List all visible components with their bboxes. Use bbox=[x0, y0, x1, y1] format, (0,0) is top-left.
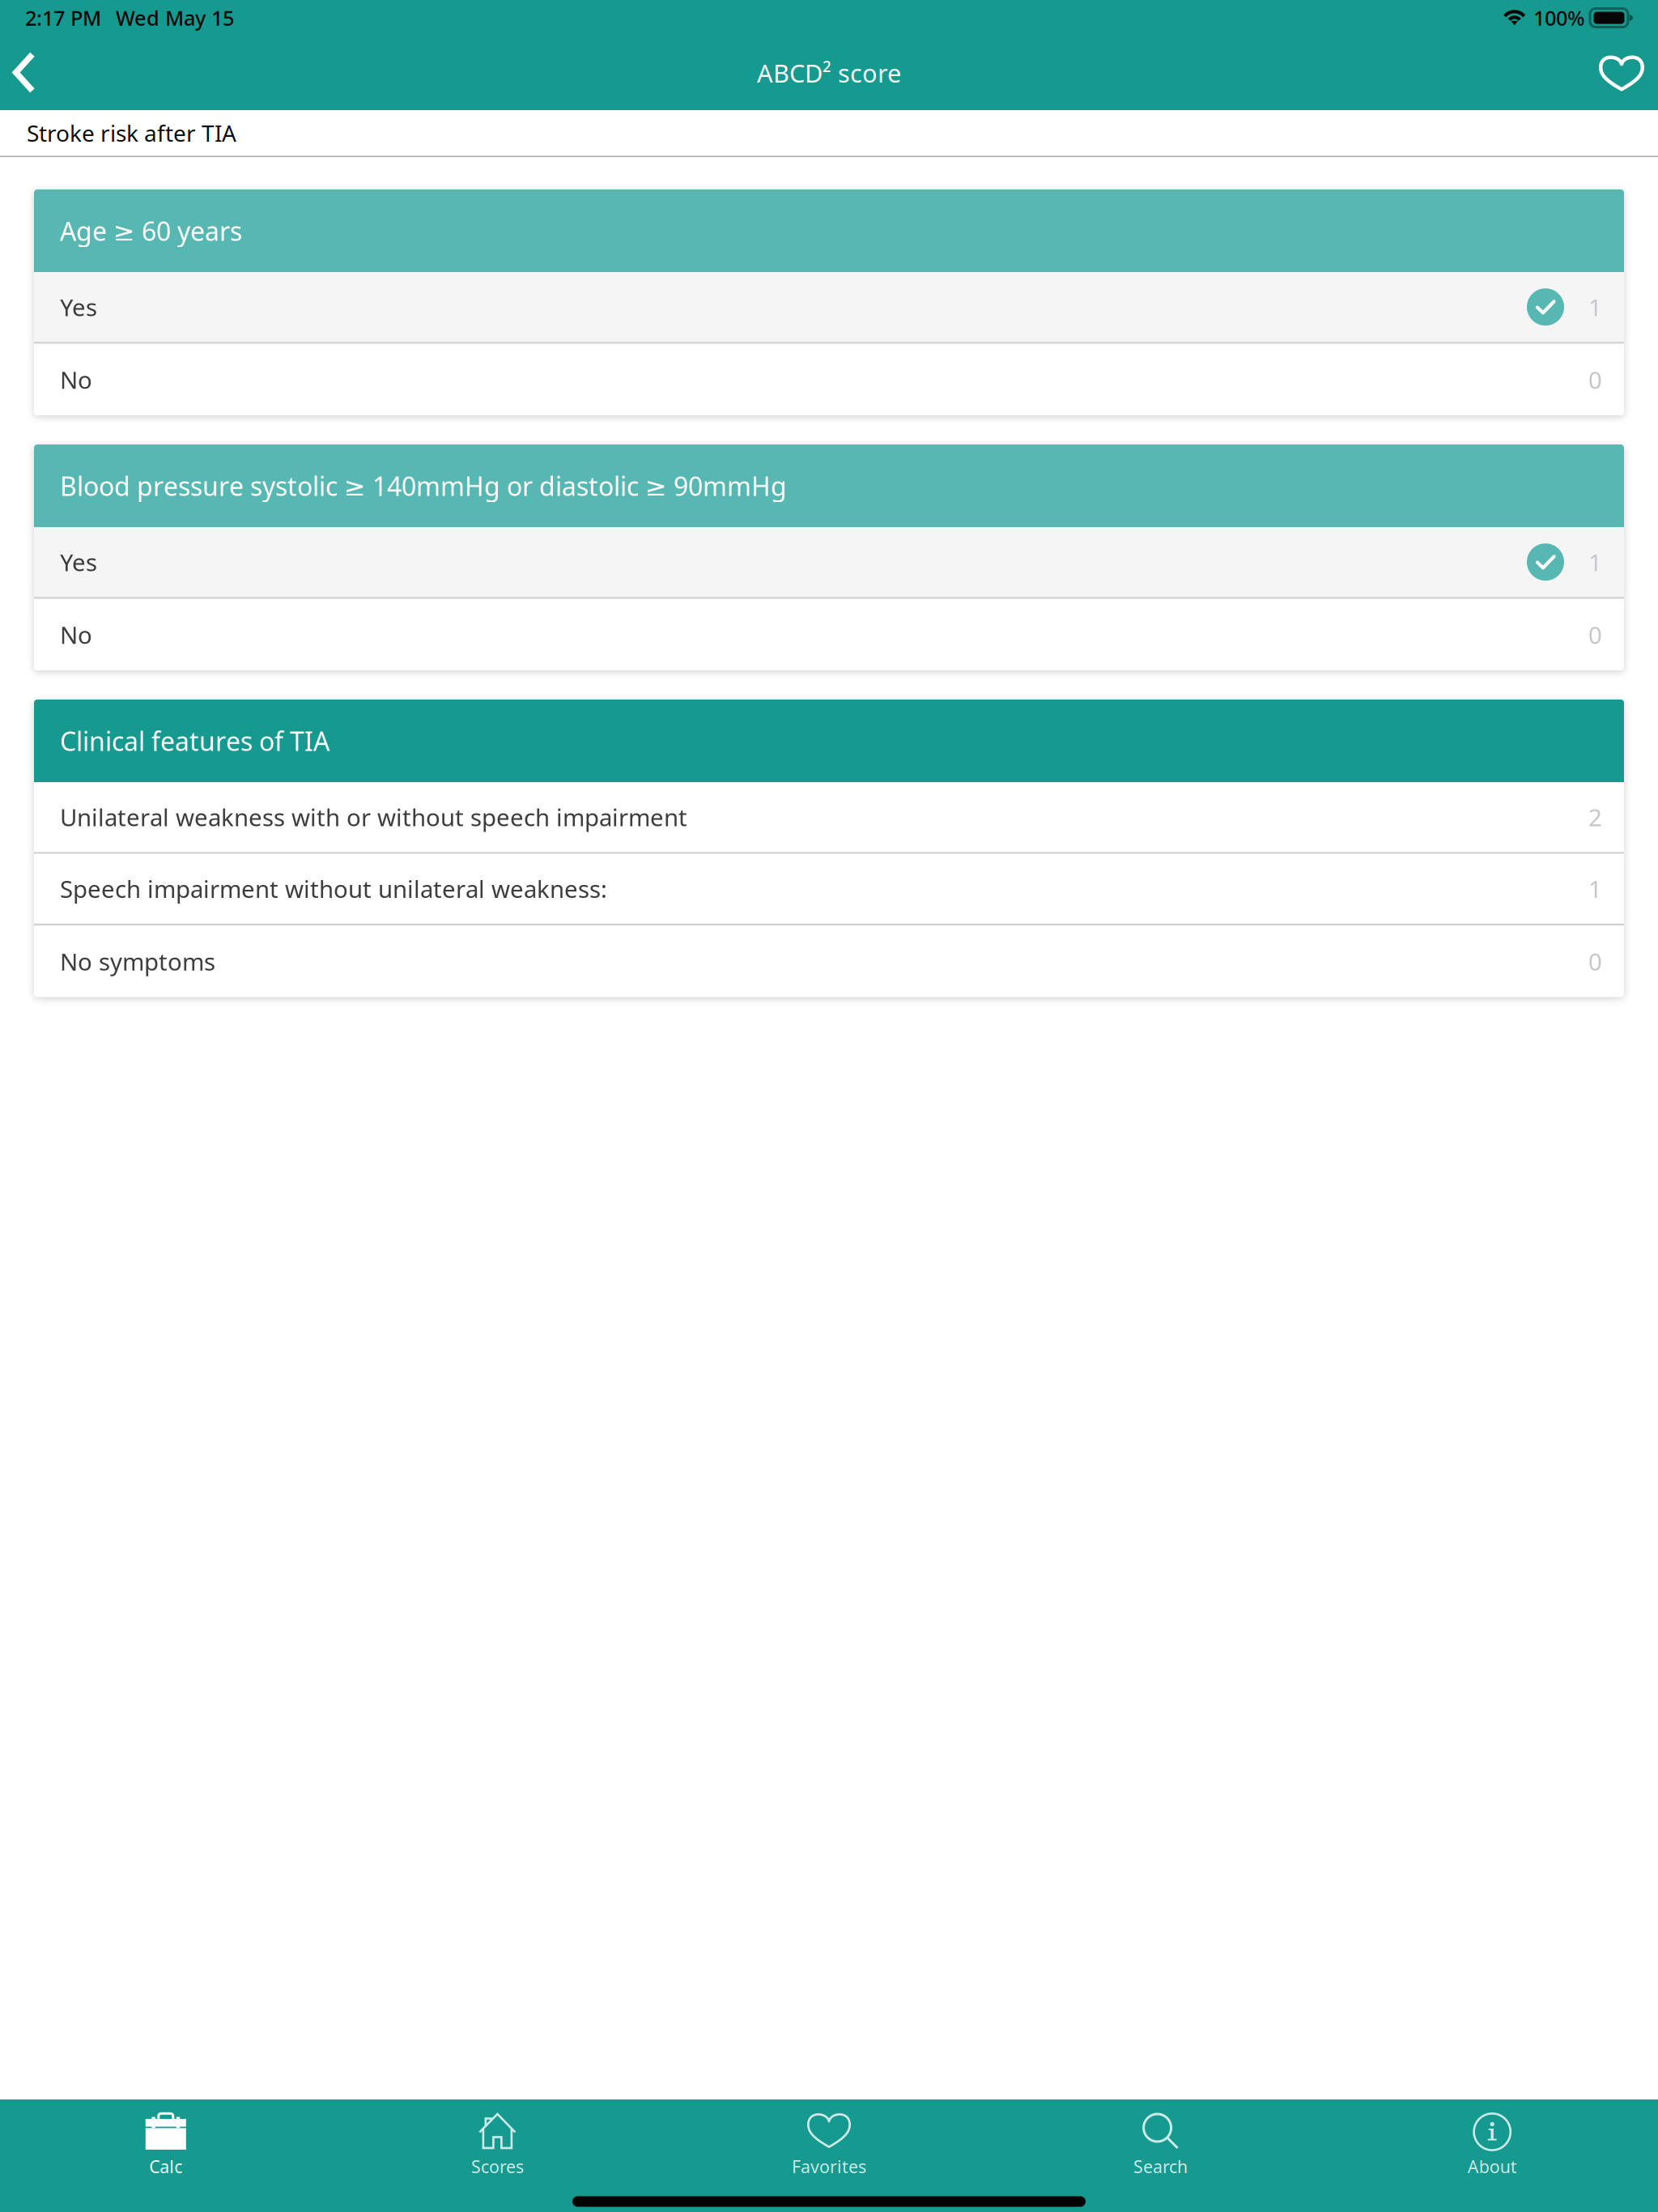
staticText: Scores bbox=[471, 2155, 524, 2178]
staticText: No symptoms bbox=[60, 946, 215, 977]
button[interactable]: No bbox=[34, 599, 1624, 670]
staticText: 1 bbox=[1588, 291, 1602, 323]
button[interactable]: Calc bbox=[0, 2099, 332, 2191]
button[interactable]: Speech impairment without unilateral wea… bbox=[34, 854, 1624, 925]
button[interactable]: Yes bbox=[34, 527, 1624, 599]
button[interactable]: No bbox=[34, 344, 1624, 415]
staticText: 100% bbox=[1533, 4, 1585, 31]
staticText: Yes bbox=[60, 291, 97, 323]
staticText: Calc bbox=[149, 2155, 182, 2178]
staticText: 0 bbox=[1588, 946, 1602, 977]
staticText: Clinical features of TIA bbox=[60, 724, 329, 758]
staticText: Wed May 15 bbox=[116, 4, 234, 31]
staticText: 1 bbox=[1588, 873, 1602, 905]
staticText: 2 bbox=[1588, 801, 1602, 833]
button[interactable]: Favorites bbox=[663, 2099, 995, 2191]
staticText: Blood pressure systolic ≥ 140mmHg or dia… bbox=[60, 469, 787, 503]
staticText: 0 bbox=[1588, 364, 1602, 395]
staticText: Yes bbox=[60, 546, 97, 578]
staticText: 1 bbox=[1588, 546, 1602, 578]
button[interactable]: Add to favourites bbox=[1588, 36, 1656, 110]
button[interactable]: Search bbox=[995, 2099, 1326, 2191]
staticText: About bbox=[1468, 2155, 1517, 2178]
button[interactable]: Back bbox=[0, 36, 74, 110]
button[interactable]: Unilateral weakness with or without spee… bbox=[34, 782, 1624, 854]
staticText: Favorites bbox=[792, 2155, 866, 2178]
button[interactable]: About bbox=[1326, 2099, 1658, 2191]
staticText: Search bbox=[1133, 2155, 1188, 2178]
staticText: No bbox=[60, 619, 92, 650]
staticText: Age ≥ 60 years bbox=[60, 214, 242, 248]
button[interactable]: Scores bbox=[332, 2099, 663, 2191]
staticText: Stroke risk after TIA bbox=[27, 118, 236, 148]
button[interactable]: Yes bbox=[34, 272, 1624, 344]
button[interactable]: No symptoms bbox=[34, 925, 1624, 997]
staticText: Unilateral weakness with or without spee… bbox=[60, 801, 687, 833]
staticText: No bbox=[60, 364, 92, 395]
staticText: Speech impairment without unilateral wea… bbox=[60, 873, 607, 905]
staticText: ABCD² score bbox=[757, 56, 901, 89]
staticText: 0 bbox=[1588, 619, 1602, 650]
staticText: 2:17 PM bbox=[25, 4, 101, 31]
